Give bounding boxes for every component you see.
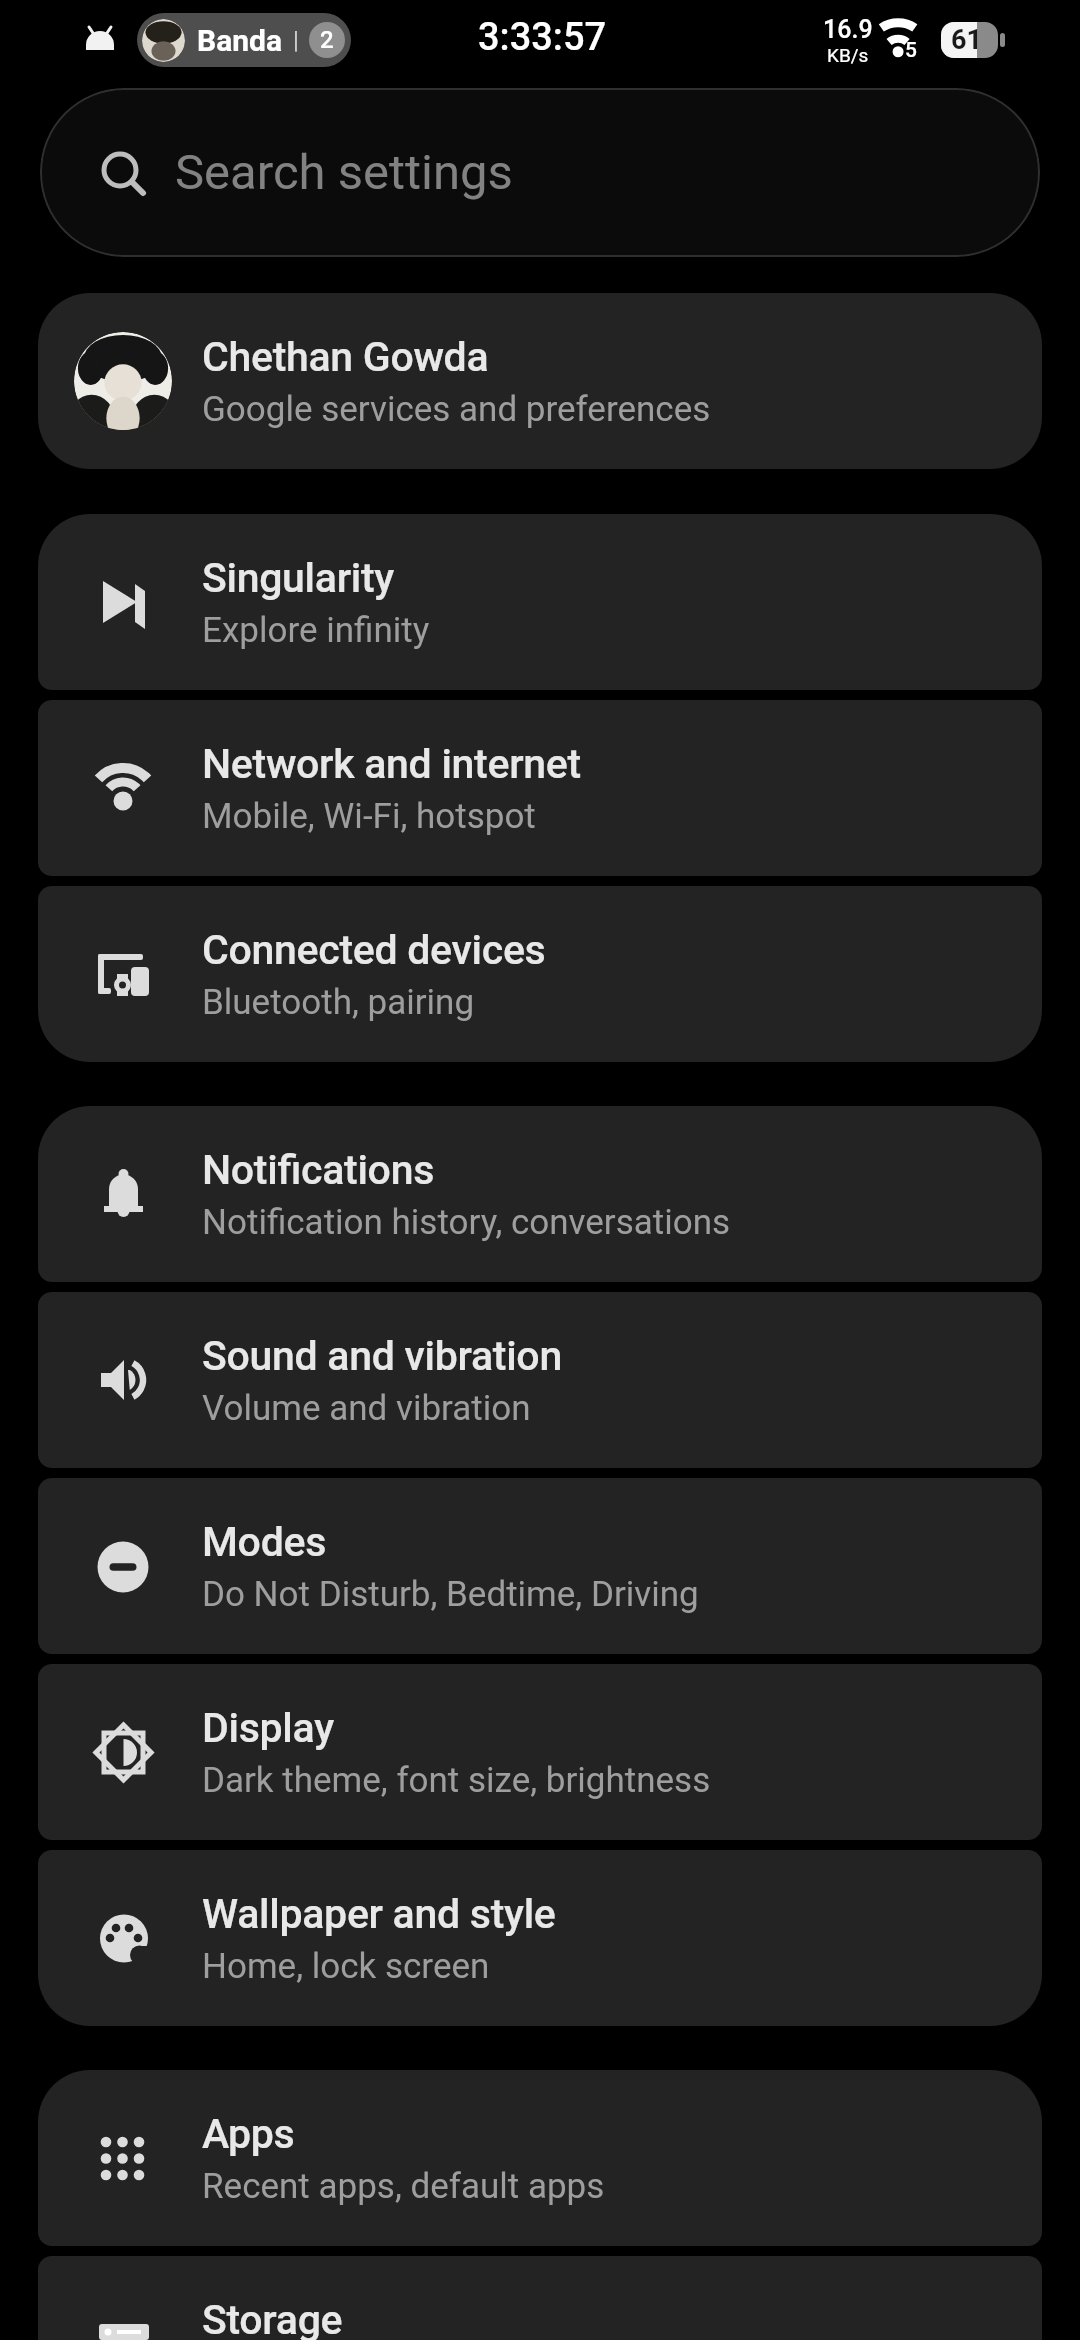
staticText: Dark theme, font size, brightness: [202, 1760, 711, 1801]
staticText: Modes: [202, 1518, 327, 1566]
staticText: Singularity: [202, 554, 394, 602]
button[interactable]: Sound and vibration: [38, 1292, 1042, 1468]
button[interactable]: Apps: [38, 2070, 1042, 2246]
staticText: Notification history, conversations: [202, 1202, 731, 1243]
staticText: 3:33:57: [478, 15, 607, 60]
staticText: Connected devices: [202, 926, 546, 974]
staticText: Recent apps, default apps: [202, 2166, 605, 2207]
staticText: Storage: [202, 2296, 343, 2340]
staticText: 61: [951, 24, 982, 56]
staticText: Chethan Gowda: [202, 333, 489, 381]
button[interactable]: Storage: [38, 2256, 1042, 2340]
staticText: Sound and vibration: [202, 1332, 562, 1380]
button[interactable]: Singularity: [38, 514, 1042, 690]
button[interactable]: Notifications: [38, 1106, 1042, 1282]
staticText: Google services and preferences: [202, 389, 711, 430]
staticText: 2: [320, 26, 334, 54]
button[interactable]: Search settings: [40, 88, 1040, 257]
staticText: Wallpaper and style: [202, 1890, 556, 1938]
staticText: Notifications: [202, 1146, 435, 1194]
staticText: Volume and vibration: [202, 1388, 531, 1429]
staticText: Network and internet: [202, 740, 581, 788]
staticText: Do Not Disturb, Bedtime, Driving: [202, 1574, 699, 1615]
button[interactable]: Banda: [137, 13, 351, 67]
button[interactable]: Wallpaper and style: [38, 1850, 1042, 2026]
staticText: Bluetooth, pairing: [202, 982, 475, 1023]
staticText: Search settings: [175, 144, 513, 201]
staticText: KB/s: [827, 44, 869, 66]
button[interactable]: Network and internet: [38, 700, 1042, 876]
staticText: 5: [905, 38, 917, 63]
staticText: |: [293, 26, 299, 54]
button[interactable]: Display: [38, 1664, 1042, 1840]
staticText: Apps: [202, 2110, 295, 2158]
staticText: Explore infinity: [202, 610, 430, 651]
button[interactable]: Chethan Gowda: [38, 293, 1042, 469]
staticText: 16.9: [823, 15, 873, 44]
staticText: Home, lock screen: [202, 1946, 490, 1987]
staticText: Banda: [197, 23, 283, 58]
staticText: Mobile, Wi-Fi, hotspot: [202, 796, 536, 837]
staticText: Display: [202, 1704, 334, 1752]
button[interactable]: Connected devices: [38, 886, 1042, 1062]
button[interactable]: Modes: [38, 1478, 1042, 1654]
